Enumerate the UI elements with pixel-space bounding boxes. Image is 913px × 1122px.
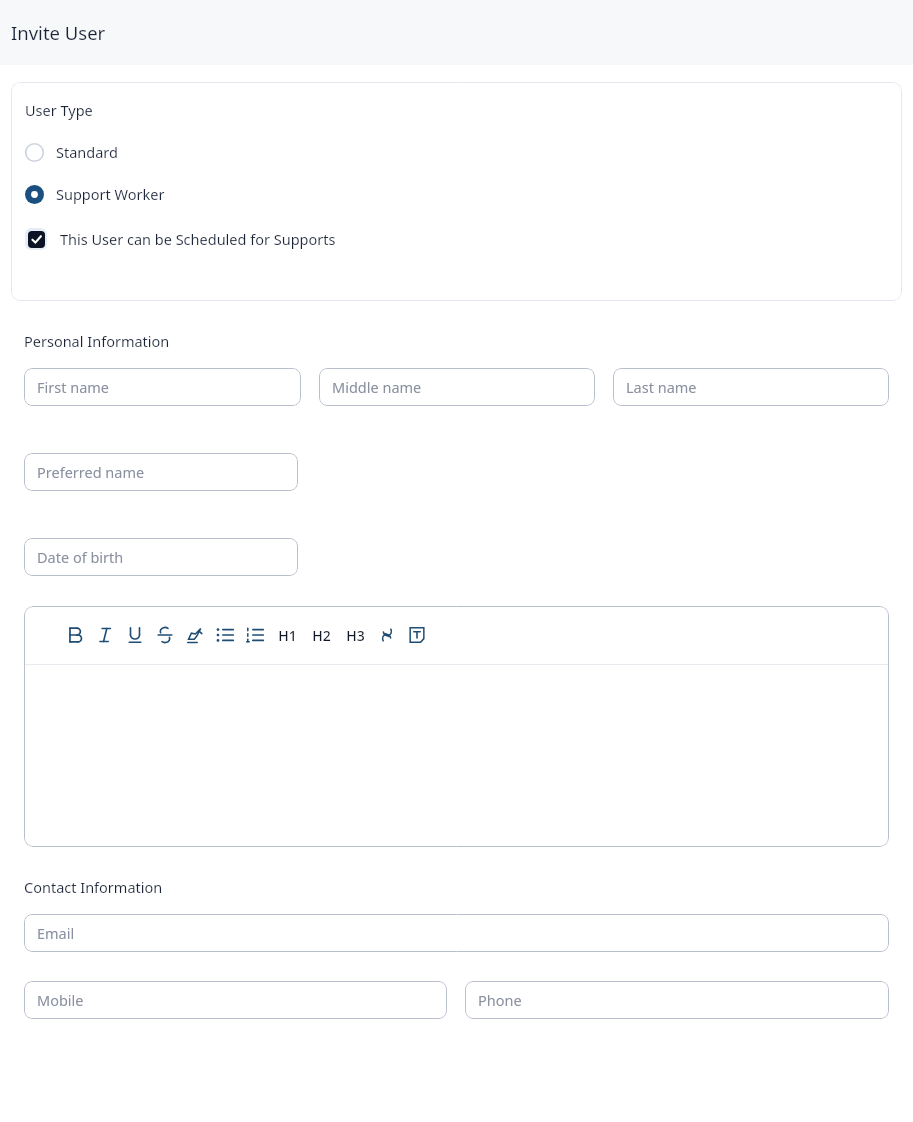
button[interactable]: Insert template (402, 620, 432, 650)
button[interactable]: Support Worker (25, 184, 177, 204)
button[interactable]: Insert link (372, 620, 402, 650)
staticText: Personal Information (24, 331, 170, 351)
button[interactable]: Bulleted list (210, 620, 240, 650)
button[interactable]: H2 (304, 618, 338, 652)
button[interactable]: First name (24, 368, 301, 406)
staticText: Date of birth (37, 547, 124, 567)
staticText: H2 (312, 626, 331, 645)
button[interactable]: Phone (465, 981, 889, 1019)
staticText: First name (37, 377, 110, 397)
button[interactable]: H3 (338, 618, 372, 652)
staticText: Standard (56, 142, 118, 162)
button[interactable]: Numbered list (240, 620, 270, 650)
button[interactable]: Underline (120, 620, 150, 650)
staticText: Support Worker (56, 184, 165, 204)
staticText: Last name (626, 377, 697, 397)
button[interactable]: Strikethrough (150, 620, 180, 650)
staticText: Preferred name (37, 462, 145, 482)
button[interactable]: This User can be Scheduled for Supports (25, 228, 348, 250)
staticText: Invite User (11, 20, 106, 45)
staticText: Middle name (332, 377, 422, 397)
staticText: Contact Information (24, 877, 163, 897)
staticText: User Type (25, 100, 93, 120)
staticText: This User can be Scheduled for Supports (60, 229, 336, 249)
staticText: H3 (346, 626, 365, 645)
button[interactable]: Italic (90, 620, 120, 650)
button[interactable]: Bold (60, 620, 90, 650)
button[interactable]: Last name (613, 368, 889, 406)
button[interactable]: Date of birth (24, 538, 298, 576)
button[interactable]: H1 (270, 618, 304, 652)
button[interactable]: Middle name (319, 368, 595, 406)
button[interactable]: Mobile (24, 981, 447, 1019)
staticText: H1 (278, 626, 297, 645)
staticText: Mobile (37, 990, 84, 1010)
button[interactable]: Preferred name (24, 453, 298, 491)
staticText: Email (37, 923, 75, 943)
button[interactable]: Email (24, 914, 889, 952)
button[interactable]: Standard (25, 142, 130, 162)
staticText: Phone (478, 990, 522, 1010)
button[interactable] (24, 665, 889, 847)
button[interactable]: Highlight (180, 620, 210, 650)
